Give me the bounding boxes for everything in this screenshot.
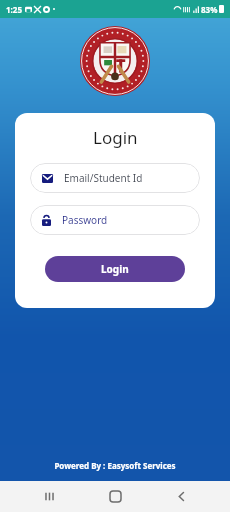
staticText: Email/Student Id bbox=[64, 171, 143, 185]
staticText: Password bbox=[62, 213, 108, 227]
staticText: 1:25 bbox=[6, 4, 22, 15]
staticText: Login bbox=[101, 262, 129, 276]
staticText: Login bbox=[93, 126, 138, 149]
button[interactable]: Password bbox=[30, 205, 200, 235]
staticText: Powered By : Easysoft Services bbox=[54, 460, 176, 471]
button[interactable]: Recent apps bbox=[32, 481, 66, 512]
button[interactable]: Email/Student Id bbox=[30, 163, 200, 193]
button[interactable]: Home bbox=[98, 481, 132, 512]
button[interactable]: Login bbox=[45, 256, 185, 282]
staticText: 83% bbox=[201, 4, 218, 15]
button[interactable]: Back bbox=[164, 481, 198, 512]
